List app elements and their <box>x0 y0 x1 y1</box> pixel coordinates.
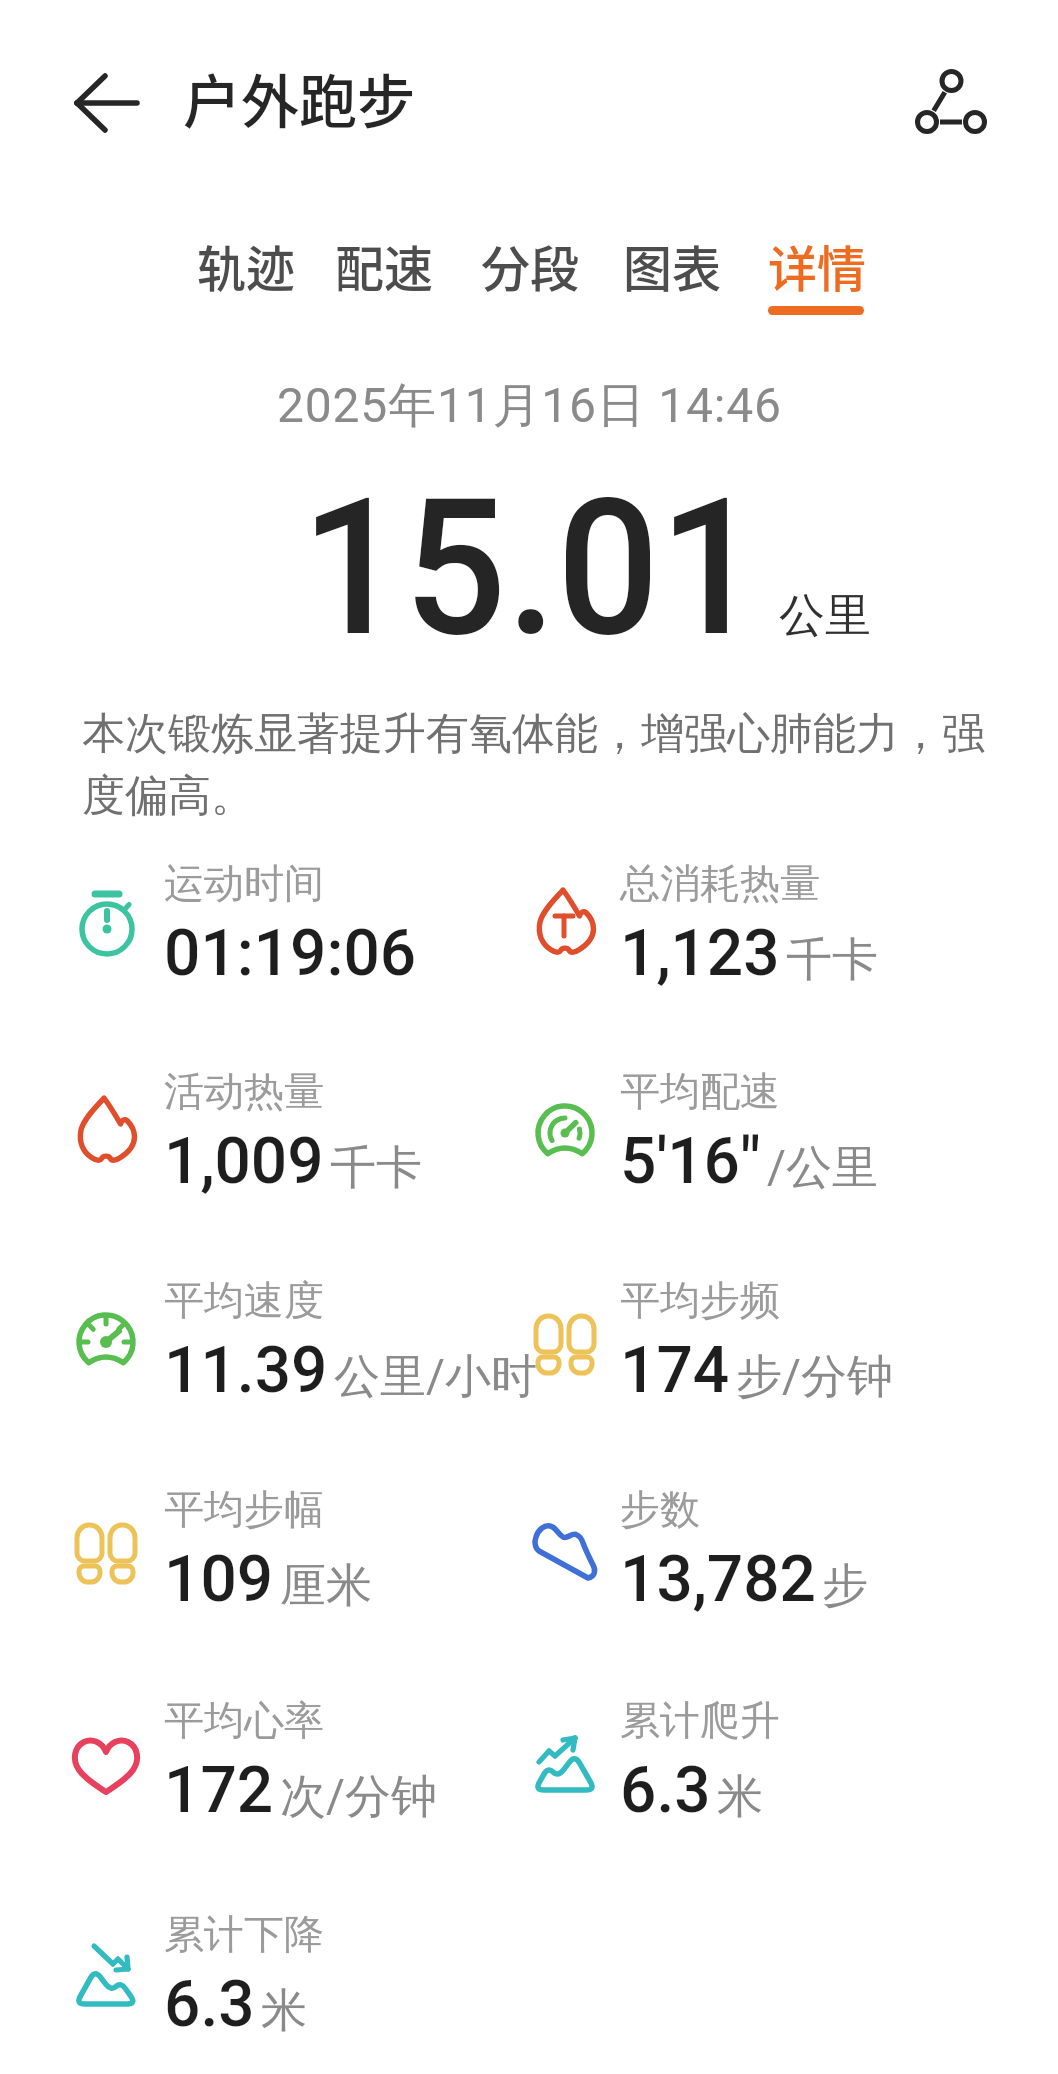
staticText: 图表 <box>623 230 722 301</box>
staticText: 厘米 <box>280 1557 372 1615</box>
staticText: 次/分钟 <box>280 1768 437 1826</box>
staticText: 本次锻炼显著提升有氧体能，增强心肺能力，强 <box>82 707 985 761</box>
staticText: 详情 <box>768 230 867 301</box>
staticText: 平均速度 <box>164 1275 324 1325</box>
staticText: 平均配速 <box>620 1066 780 1116</box>
staticText: 2025年11月16日 14:46 <box>277 376 782 436</box>
button[interactable] <box>60 60 150 150</box>
button[interactable]: 图表 <box>611 228 733 316</box>
staticText: 步数 <box>620 1484 700 1534</box>
staticText: 累计下降 <box>164 1909 324 1959</box>
button[interactable]: 轨迹 <box>185 228 307 316</box>
staticText: 109 <box>164 1542 274 1617</box>
staticText: 户外跑步 <box>183 56 416 140</box>
staticText: 11.39 <box>164 1333 328 1408</box>
staticText: 6.3 <box>620 1753 711 1828</box>
staticText: 千卡 <box>786 931 878 989</box>
staticText: 公里/小时 <box>334 1348 537 1406</box>
button[interactable]: 分段 <box>469 228 591 316</box>
staticText: 千卡 <box>330 1139 422 1197</box>
staticText: 公里 <box>779 587 871 645</box>
staticText: 米 <box>717 1768 763 1826</box>
staticText: 5'16" <box>620 1124 761 1199</box>
staticText: 174 <box>620 1333 730 1408</box>
staticText: /公里 <box>767 1139 878 1197</box>
staticText: 度偏高。 <box>82 769 254 823</box>
staticText: 1,009 <box>164 1124 324 1199</box>
staticText: 步/分钟 <box>736 1348 893 1406</box>
staticText: 平均心率 <box>164 1695 324 1745</box>
button[interactable]: 详情 <box>756 228 878 316</box>
staticText: 6.3 <box>164 1967 255 2042</box>
staticText: 15.01 <box>301 457 763 680</box>
staticText: 平均步频 <box>620 1275 780 1325</box>
button[interactable] <box>900 48 1000 148</box>
staticText: 1,123 <box>620 916 780 991</box>
staticText: 配速 <box>335 230 434 301</box>
staticText: 总消耗热量 <box>620 858 820 908</box>
staticText: 平均步幅 <box>164 1484 324 1534</box>
staticText: 轨迹 <box>197 230 296 301</box>
staticText: 步 <box>822 1557 868 1615</box>
button[interactable]: 配速 <box>323 228 445 316</box>
staticText: 累计爬升 <box>620 1695 780 1745</box>
staticText: 米 <box>261 1982 307 2040</box>
staticText: 活动热量 <box>164 1066 324 1116</box>
staticText: 172 <box>164 1753 274 1828</box>
staticText: 分段 <box>481 230 580 301</box>
staticText: 运动时间 <box>164 858 324 908</box>
staticText: 13,782 <box>620 1542 816 1617</box>
staticText: 01:19:06 <box>164 916 417 991</box>
